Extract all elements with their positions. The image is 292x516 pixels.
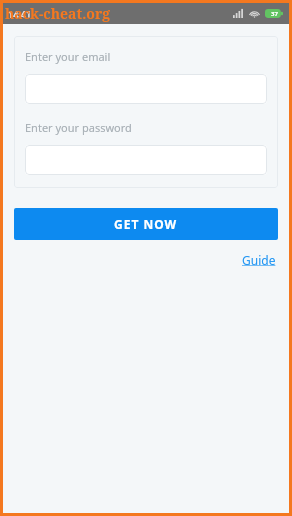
button[interactable]: Guide xyxy=(240,250,278,270)
staticText: Enter your email xyxy=(25,49,111,64)
button[interactable] xyxy=(25,145,267,175)
staticText: Guide xyxy=(242,252,276,268)
staticText: 14:41 xyxy=(8,8,32,20)
staticText: Enter your password xyxy=(25,120,132,135)
staticText: 37 xyxy=(271,10,278,18)
staticText: GET NOW xyxy=(114,216,178,232)
button[interactable]: GET NOW xyxy=(14,208,278,240)
button[interactable] xyxy=(25,74,267,104)
staticText: hack-cheat.org xyxy=(5,4,111,23)
